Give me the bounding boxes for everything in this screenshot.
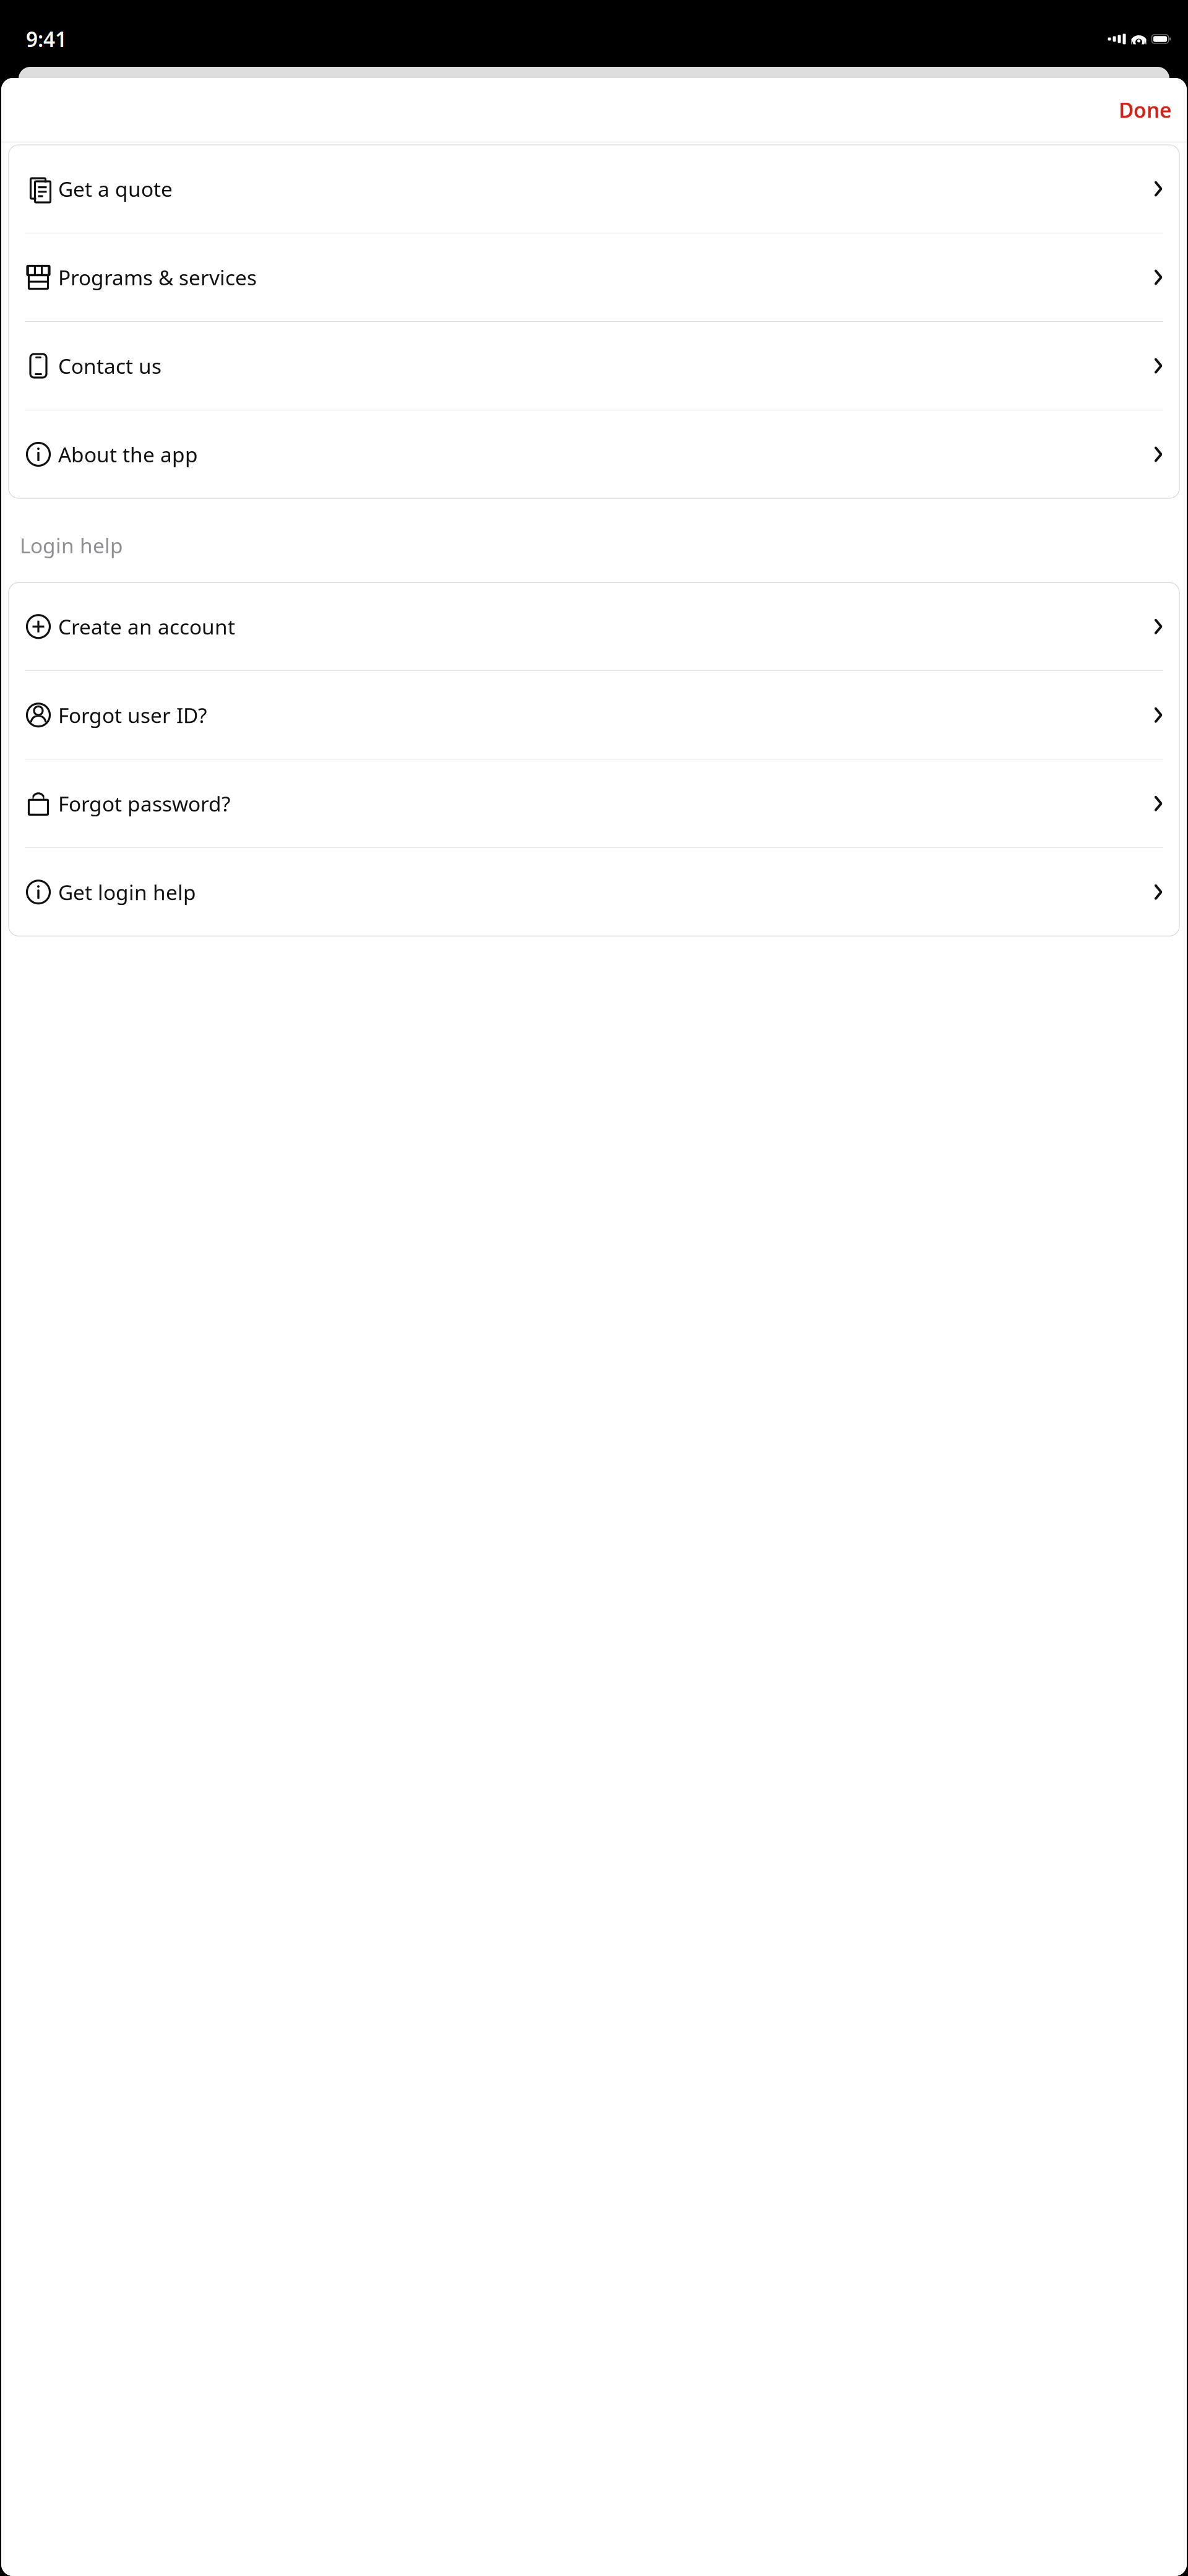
staticText: About the app — [58, 441, 198, 468]
staticText: Forgot user ID? — [58, 701, 207, 729]
button[interactable]: Get a quote — [9, 145, 1179, 233]
staticText: Forgot password? — [58, 790, 230, 817]
button[interactable]: Done — [1110, 90, 1181, 130]
button[interactable]: Create an account — [9, 583, 1179, 670]
staticText: Get login help — [58, 878, 196, 906]
staticText: Get a quote — [58, 175, 173, 203]
staticText: 9:41 — [26, 25, 67, 53]
button[interactable]: About the app — [9, 410, 1179, 498]
staticText: Login help — [20, 532, 123, 559]
button[interactable]: Forgot user ID? — [9, 671, 1179, 759]
staticText: Create an account — [58, 613, 235, 640]
button[interactable]: Get login help — [9, 848, 1179, 936]
button[interactable]: Forgot password? — [9, 760, 1179, 848]
staticText: Contact us — [58, 352, 161, 380]
button[interactable]: Programs & services — [9, 233, 1179, 321]
staticText: Done — [1119, 96, 1172, 124]
button[interactable]: Contact us — [9, 322, 1179, 410]
staticText: Programs & services — [58, 264, 257, 291]
